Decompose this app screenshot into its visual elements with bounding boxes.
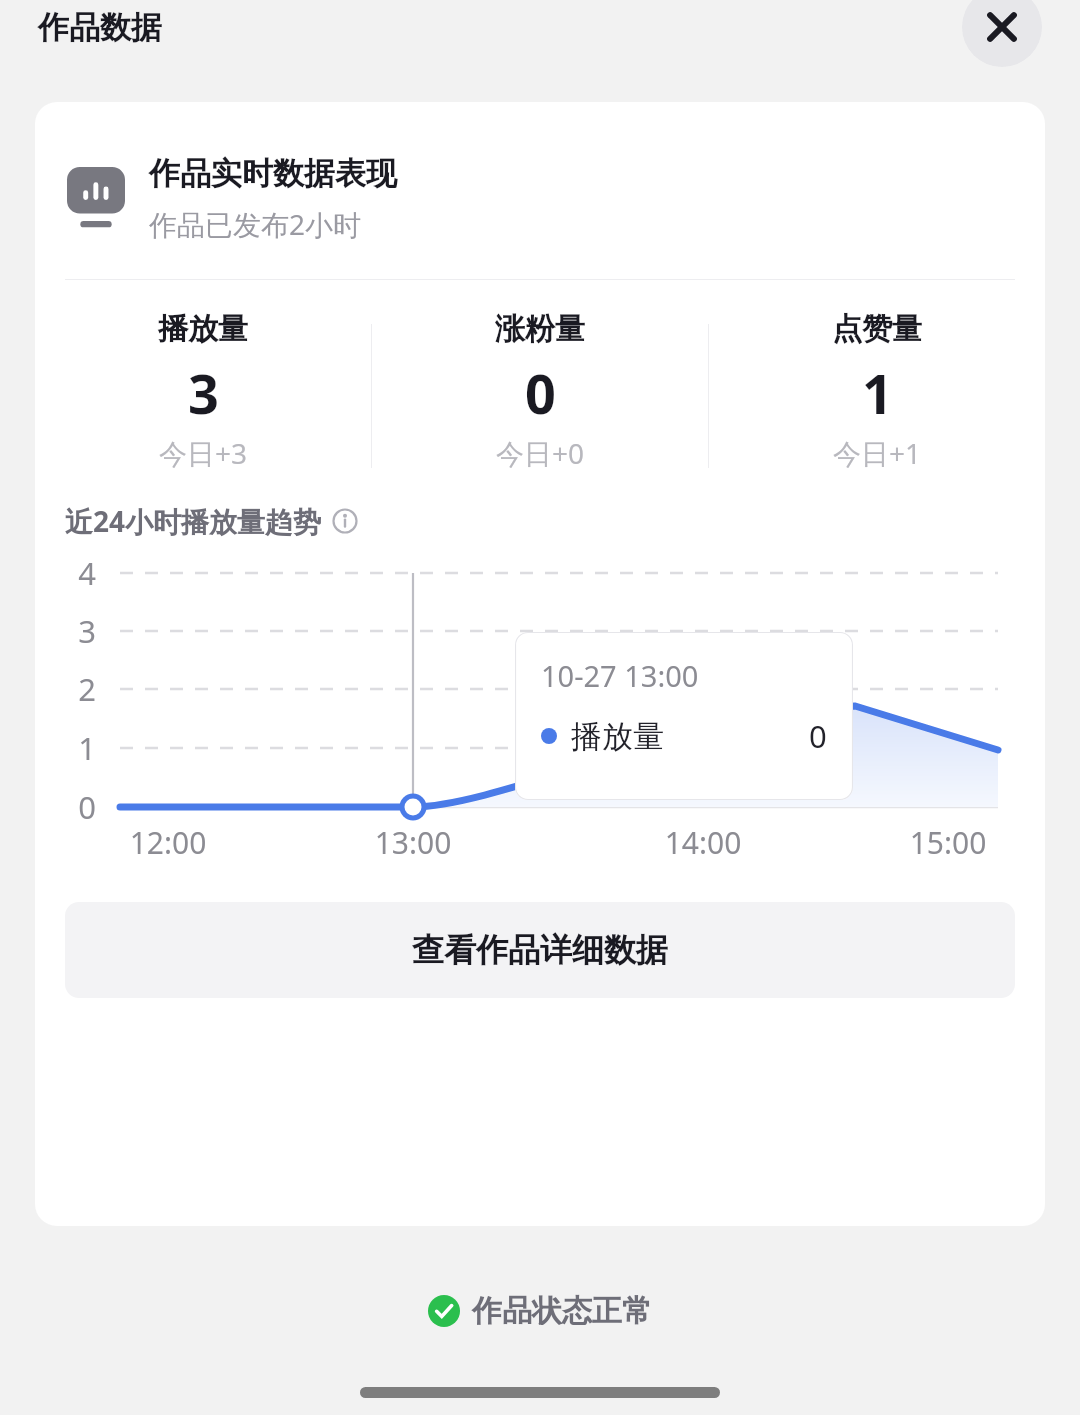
staticText: 播放量 xyxy=(158,310,248,348)
staticText: 3 xyxy=(188,356,219,430)
staticText: 3 xyxy=(65,610,109,652)
staticText: 0 xyxy=(809,715,827,757)
staticText: 作品数据 xyxy=(38,8,162,47)
staticText: 近24小时播放量趋势 xyxy=(65,502,322,540)
staticText: 10-27 13:00 xyxy=(541,656,699,695)
staticText: 0 xyxy=(65,786,109,828)
staticText: 今日+3 xyxy=(159,434,248,472)
button[interactable]: 播放量 xyxy=(35,310,371,472)
staticText: 查看作品详细数据 xyxy=(412,930,668,970)
staticText: 0 xyxy=(525,356,556,430)
staticText: 作品状态正常 xyxy=(472,1292,652,1330)
staticText: 今日+0 xyxy=(496,434,585,472)
staticText: 15:00 xyxy=(888,822,1008,863)
button[interactable]: 点赞量 xyxy=(709,310,1045,472)
staticText: 作品已发布2小时 xyxy=(149,205,362,243)
button[interactable]: 涨粉量 xyxy=(372,310,708,472)
staticText: 播放量 xyxy=(571,717,664,756)
staticText: 涨粉量 xyxy=(495,310,585,348)
staticText: 点赞量 xyxy=(832,310,922,348)
button[interactable]: Close xyxy=(962,0,1042,67)
staticText: 今日+1 xyxy=(833,434,922,472)
staticText: 1 xyxy=(65,727,109,769)
staticText: 14:00 xyxy=(643,822,763,863)
staticText: 2 xyxy=(65,668,109,710)
button[interactable]: 查看作品详细数据 xyxy=(65,902,1015,998)
staticText: 作品实时数据表现 xyxy=(149,154,397,193)
staticText: 12:00 xyxy=(108,822,228,863)
staticText: 1 xyxy=(862,356,893,430)
staticText: 4 xyxy=(65,552,109,594)
staticText: 13:00 xyxy=(353,822,473,863)
